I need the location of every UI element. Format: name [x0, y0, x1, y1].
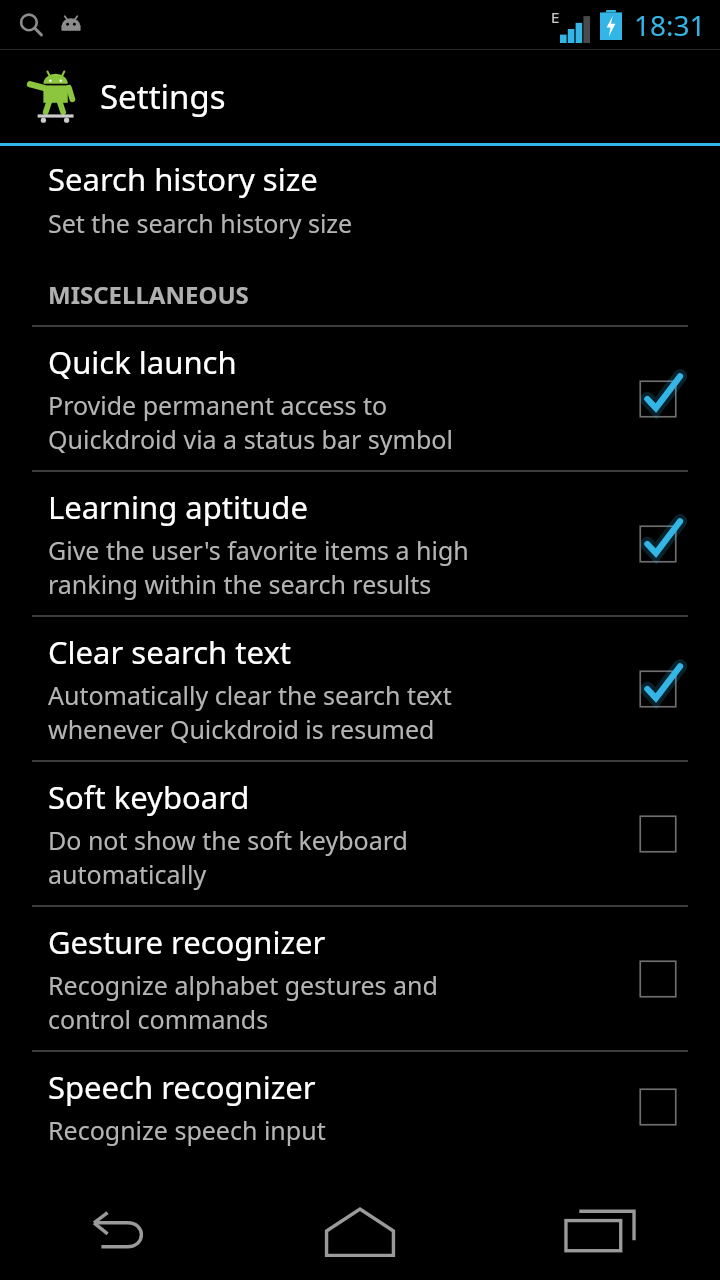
staticText: E [551, 7, 560, 27]
button[interactable]: Clear search text [628, 659, 688, 719]
button[interactable]: Back [0, 1184, 240, 1280]
staticText: Recognize alphabet gestures and [48, 968, 438, 1002]
staticText: MISCELLANEOUS [48, 278, 249, 311]
staticText: automatically [48, 857, 207, 891]
staticText: ranking within the search results [48, 567, 432, 601]
staticText: Settings [100, 74, 226, 119]
staticText: Set the search history size [48, 206, 353, 240]
button[interactable]: Speech recognizer [628, 1077, 688, 1137]
staticText: Clear search text [48, 631, 291, 673]
button[interactable]: Home [240, 1184, 480, 1280]
staticText: Speech recognizer [48, 1066, 316, 1108]
button[interactable]: Learning aptitude [628, 514, 688, 574]
staticText: Give the user's favorite items a high [48, 533, 469, 567]
button[interactable]: Quick launch [0, 327, 720, 470]
button[interactable]: Gesture recognizer [628, 949, 688, 1009]
button[interactable]: Search history size [0, 146, 720, 248]
staticText: 18:31 [634, 6, 706, 44]
staticText: Quick launch [48, 341, 237, 383]
staticText: Quickdroid via a status bar symbol [48, 422, 453, 456]
staticText: Search history size [48, 158, 318, 200]
staticText: Recognize speech input [48, 1113, 326, 1147]
button[interactable]: Soft keyboard [0, 762, 720, 905]
button[interactable]: Learning aptitude [0, 472, 720, 615]
staticText: Automatically clear the search text [48, 678, 452, 712]
button[interactable]: Gesture recognizer [0, 907, 720, 1050]
button[interactable]: Recent apps [480, 1184, 720, 1280]
button[interactable]: Speech recognizer [0, 1052, 720, 1161]
staticText: Soft keyboard [48, 776, 250, 818]
staticText: Learning aptitude [48, 486, 308, 528]
staticText: Do not show the soft keyboard [48, 823, 408, 857]
staticText: Provide permanent access to [48, 388, 388, 422]
staticText: control commands [48, 1002, 269, 1036]
button[interactable]: Soft keyboard [628, 804, 688, 864]
staticText: Gesture recognizer [48, 921, 326, 963]
button[interactable]: Clear search text [0, 617, 720, 760]
staticText: whenever Quickdroid is resumed [48, 712, 435, 746]
button[interactable]: Quick launch [628, 369, 688, 429]
